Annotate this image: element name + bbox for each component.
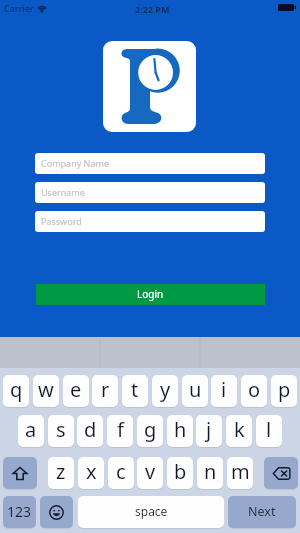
staticText: a [25, 416, 37, 443]
staticText: q [10, 376, 23, 403]
staticText: c [116, 458, 126, 485]
button[interactable]: f [107, 415, 133, 447]
staticText: u [189, 376, 202, 403]
button[interactable]: t [122, 375, 148, 407]
staticText: i [221, 376, 227, 403]
button[interactable]: z [48, 457, 74, 489]
button[interactable]: i [211, 375, 237, 407]
button[interactable]: v [137, 457, 163, 489]
staticText: t [131, 376, 139, 403]
button[interactable]: Emoji [40, 496, 73, 528]
staticText: o [248, 376, 261, 403]
staticText: y [160, 376, 171, 403]
button[interactable]: o [241, 375, 267, 407]
button[interactable]: q [3, 375, 29, 407]
button[interactable]: Backspace [264, 457, 298, 489]
staticText: z [56, 458, 66, 485]
staticText: d [84, 416, 97, 443]
button[interactable]: h [167, 415, 193, 447]
staticText: Username [41, 186, 85, 198]
staticText: b [174, 458, 187, 485]
staticText: j [206, 416, 212, 443]
staticText: Carrier [4, 2, 34, 14]
button[interactable]: u [182, 375, 208, 407]
staticText: Login [137, 287, 164, 301]
staticText: Password [41, 215, 82, 227]
button[interactable]: p [271, 375, 297, 407]
staticText: 2:22 PM [135, 3, 170, 15]
staticText: e [70, 376, 82, 403]
button[interactable]: space [78, 496, 224, 528]
staticText: w [38, 376, 54, 403]
button[interactable]: Company Name [35, 153, 265, 174]
button[interactable]: j [196, 415, 222, 447]
button[interactable]: d [77, 415, 103, 447]
button[interactable]: c [108, 457, 134, 489]
staticText: k [234, 416, 245, 443]
staticText: p [278, 376, 291, 403]
button[interactable]: k [226, 415, 252, 447]
staticText: n [204, 458, 217, 485]
button[interactable]: r [92, 375, 118, 407]
button[interactable]: Login [36, 284, 265, 305]
staticText: g [144, 416, 157, 443]
button[interactable]: a [18, 415, 44, 447]
button[interactable]: e [63, 375, 89, 407]
button[interactable]: 123 [3, 496, 36, 528]
staticText: f [117, 416, 124, 443]
staticText: h [174, 416, 187, 443]
button[interactable]: g [137, 415, 163, 447]
staticText: v [145, 458, 156, 485]
button[interactable]: Shift [3, 457, 37, 489]
button[interactable]: x [78, 457, 104, 489]
button[interactable]: Username [35, 182, 265, 203]
staticText: x [86, 458, 97, 485]
button[interactable]: Next [228, 496, 296, 528]
staticText: space [135, 503, 168, 519]
button[interactable]: Password [35, 211, 265, 232]
button[interactable]: w [33, 375, 59, 407]
staticText: Company Name [41, 157, 110, 169]
button[interactable]: m [227, 457, 253, 489]
staticText: r [101, 376, 110, 403]
button[interactable]: n [197, 457, 223, 489]
button[interactable]: y [152, 375, 178, 407]
button[interactable]: b [167, 457, 193, 489]
staticText: Next [248, 503, 276, 520]
staticText: s [56, 416, 66, 443]
staticText: m [231, 458, 250, 485]
button[interactable]: s [48, 415, 74, 447]
button[interactable]: l [256, 415, 282, 447]
staticText: 123 [7, 502, 32, 521]
staticText: l [266, 416, 272, 443]
